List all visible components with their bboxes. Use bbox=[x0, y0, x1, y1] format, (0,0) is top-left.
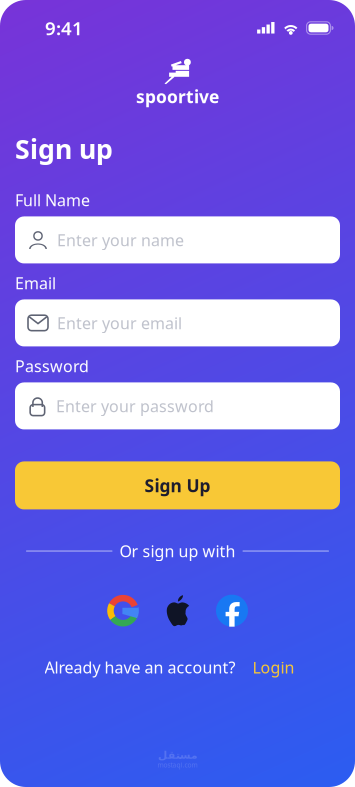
button[interactable]: Sign up with Google bbox=[107, 595, 139, 627]
staticText: Sign Up bbox=[144, 474, 210, 497]
button[interactable]: Sign up with Facebook bbox=[216, 595, 248, 627]
staticText: spoortive bbox=[136, 85, 219, 108]
staticText: Email bbox=[15, 272, 56, 293]
button[interactable]: Sign up with Apple bbox=[165, 595, 190, 626]
staticText: Enter your email bbox=[57, 312, 182, 333]
staticText: Enter your password bbox=[56, 395, 214, 416]
staticText: Login bbox=[252, 657, 294, 678]
staticText: Password bbox=[15, 355, 89, 376]
staticText: Full Name bbox=[15, 189, 90, 210]
staticText: Or sign up with bbox=[119, 540, 235, 562]
staticText: 9:41 bbox=[45, 16, 83, 40]
button[interactable]: Login bbox=[252, 657, 294, 678]
staticText: Enter your name bbox=[57, 229, 184, 250]
button[interactable]: Sign Up bbox=[15, 461, 340, 509]
staticText: Sign up bbox=[15, 131, 113, 166]
staticText: مستقل bbox=[157, 749, 197, 761]
staticText: Already have an account? bbox=[44, 657, 235, 678]
staticText: mostaql.com bbox=[157, 761, 197, 769]
